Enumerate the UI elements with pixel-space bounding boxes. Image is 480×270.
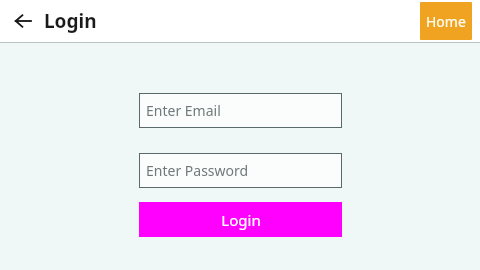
button[interactable]: Login bbox=[139, 202, 342, 237]
staticText: Login bbox=[44, 8, 97, 34]
button[interactable]: Enter Password bbox=[139, 153, 342, 188]
button[interactable]: Back bbox=[10, 8, 36, 34]
staticText: Enter Password bbox=[146, 161, 249, 180]
staticText: Login bbox=[221, 210, 261, 230]
button[interactable]: Enter Email bbox=[139, 93, 342, 128]
staticText: Enter Email bbox=[146, 101, 221, 120]
button[interactable]: Home bbox=[420, 2, 472, 40]
staticText: Home bbox=[426, 12, 466, 31]
